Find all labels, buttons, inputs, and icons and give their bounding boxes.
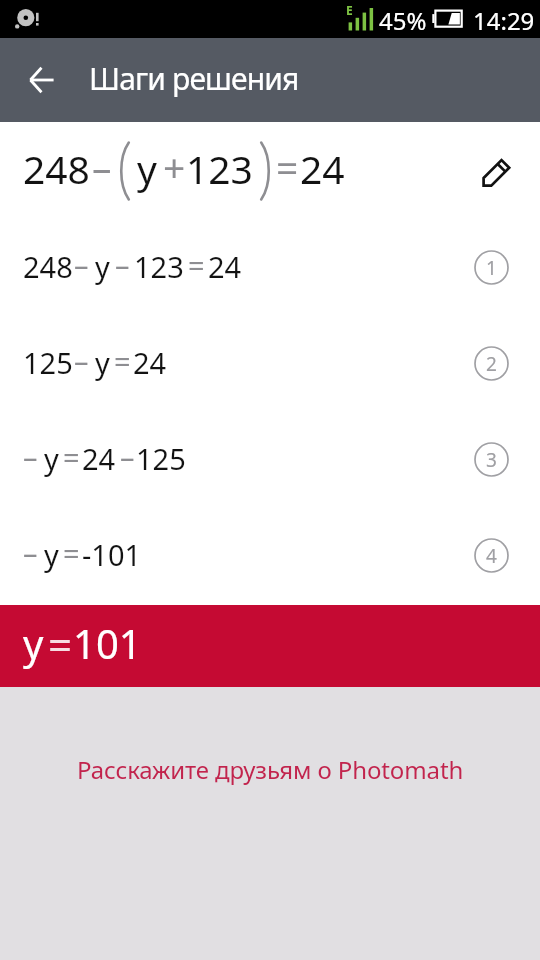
- button[interactable]: Edit: [468, 141, 528, 201]
- staticText: 24: [82, 439, 116, 478]
- staticText: –: [23, 533, 38, 572]
- staticText: E: [346, 2, 353, 18]
- staticText: =: [63, 437, 80, 476]
- button[interactable]: –: [0, 507, 540, 603]
- staticText: 24: [208, 247, 242, 286]
- staticText: 123: [186, 142, 253, 195]
- staticText: y: [137, 142, 157, 195]
- button[interactable]: –: [0, 411, 540, 507]
- staticText: 1: [486, 255, 497, 281]
- staticText: y: [44, 439, 59, 478]
- staticText: y: [95, 343, 110, 382]
- staticText: y: [95, 247, 110, 286]
- staticText: 3: [486, 447, 497, 473]
- button[interactable]: Back: [0, 38, 84, 122]
- staticText: –: [115, 245, 130, 284]
- staticText: y: [23, 616, 44, 670]
- staticText: –: [74, 245, 89, 284]
- staticText: =: [48, 615, 73, 672]
- staticText: =: [114, 341, 131, 380]
- staticText: +: [163, 140, 186, 193]
- staticText: 2: [486, 351, 497, 377]
- staticText: 24: [300, 142, 345, 195]
- staticText: 248: [23, 247, 73, 286]
- staticText: –: [74, 341, 89, 380]
- staticText: Расскажите друзьям о Photomath: [77, 753, 464, 786]
- staticText: 125: [23, 343, 73, 382]
- button[interactable]: 125: [0, 315, 540, 411]
- staticText: 125: [136, 439, 186, 478]
- button[interactable]: Расскажите друзьям о Photomath: [77, 753, 464, 786]
- staticText: =: [276, 140, 299, 193]
- staticText: –: [23, 437, 38, 476]
- staticText: =: [188, 245, 205, 284]
- staticText: 101: [73, 616, 142, 670]
- staticText: 45%: [379, 4, 427, 37]
- staticText: 248: [23, 142, 90, 195]
- staticText: –: [120, 437, 135, 476]
- staticText: y: [44, 535, 59, 574]
- staticText: 4: [486, 543, 497, 569]
- staticText: -101: [82, 535, 142, 574]
- button[interactable]: 248: [0, 219, 540, 315]
- staticText: Шаги решения: [89, 58, 299, 99]
- staticText: 14:29: [473, 4, 535, 37]
- staticText: 123: [134, 247, 184, 286]
- staticText: =: [63, 533, 80, 572]
- staticText: –: [92, 140, 112, 193]
- staticText: 24: [133, 343, 167, 382]
